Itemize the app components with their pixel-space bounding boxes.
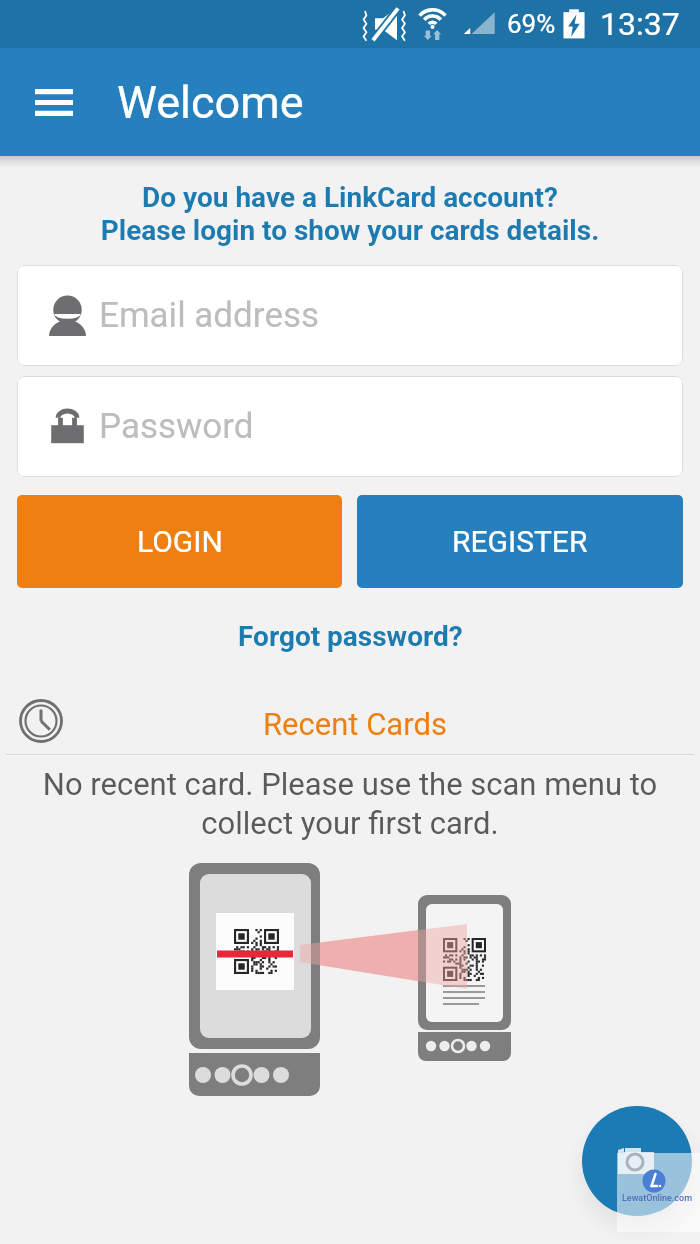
staticText: Recent Cards bbox=[263, 706, 447, 742]
staticText: LOGIN bbox=[137, 524, 223, 559]
staticText: Email address bbox=[99, 295, 320, 336]
button[interactable]: Password bbox=[17, 376, 683, 477]
button[interactable]: Scan card bbox=[582, 1106, 692, 1216]
button[interactable]: Forgot password? bbox=[0, 612, 700, 660]
staticText: Welcome bbox=[117, 76, 304, 129]
staticText: Password bbox=[99, 406, 254, 447]
staticText: 69% bbox=[507, 9, 556, 39]
staticText: Forgot password? bbox=[238, 620, 463, 653]
staticText: REGISTER bbox=[452, 524, 588, 559]
staticText: Do you have a LinkCard account? Please l… bbox=[0, 181, 700, 247]
staticText: LewatOnline.com bbox=[622, 1193, 692, 1204]
staticText: 13:37 bbox=[600, 5, 680, 43]
staticText: No recent card. Please use the scan menu… bbox=[36, 766, 664, 841]
button[interactable]: Email address bbox=[17, 265, 683, 366]
button[interactable]: REGISTER bbox=[357, 495, 683, 588]
button[interactable]: Menu bbox=[26, 74, 82, 130]
button[interactable]: LOGIN bbox=[17, 495, 342, 588]
